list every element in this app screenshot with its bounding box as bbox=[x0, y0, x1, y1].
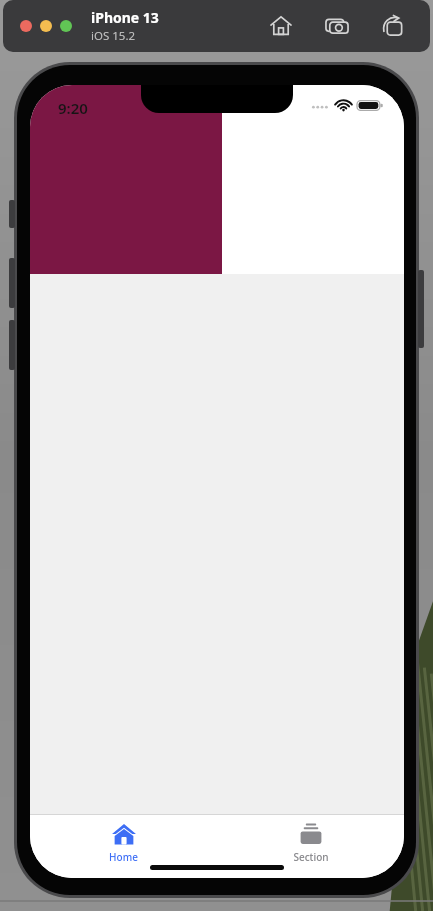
button[interactable]: Minimize bbox=[40, 20, 52, 32]
staticText: iOS 15.2 bbox=[91, 28, 136, 44]
button[interactable]: Screenshot bbox=[322, 11, 352, 41]
button[interactable]: Rotate bbox=[378, 11, 408, 41]
button[interactable]: Home bbox=[30, 815, 217, 878]
button[interactable]: Close bbox=[20, 20, 32, 32]
staticText: iPhone 13 bbox=[91, 8, 159, 27]
button[interactable]: Home bbox=[266, 11, 296, 41]
staticText: Section bbox=[293, 850, 329, 864]
staticText: Home bbox=[109, 850, 138, 864]
button[interactable]: Section bbox=[217, 815, 404, 878]
button[interactable]: Zoom bbox=[60, 20, 72, 32]
staticText: 9:20 bbox=[58, 98, 88, 118]
button[interactable]: 9:20 bbox=[30, 85, 222, 274]
